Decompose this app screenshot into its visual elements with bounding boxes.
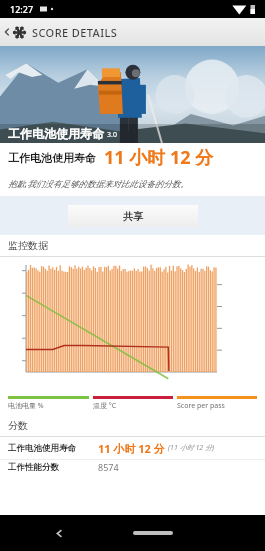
staticText: 工作性能分数 <box>8 462 98 473</box>
staticText: 11 小时 12 分 <box>104 145 214 170</box>
staticText: 共享 <box>123 210 143 223</box>
staticText: 分数 <box>8 419 28 432</box>
button[interactable]: Back <box>48 522 70 544</box>
button[interactable]: 共享 <box>68 205 198 227</box>
button[interactable]: Home <box>130 526 176 540</box>
staticText: (11 小时 12 分) <box>168 443 214 453</box>
button[interactable]: Back <box>0 18 122 46</box>
staticText: Score per pass <box>177 401 225 411</box>
staticText: 工作电池使用寿命 <box>8 443 98 454</box>
staticText: 工作电池使用寿命 <box>8 126 104 141</box>
staticText: 11 小时 12 分 <box>98 441 165 456</box>
button[interactable]: 工作电池使用寿命 <box>0 437 265 459</box>
staticText: SCORE DETAILS <box>32 25 118 40</box>
staticText: 工作电池使用寿命 <box>8 151 96 165</box>
staticText: 电池电量 % <box>8 401 44 411</box>
staticText: 抱歉,我们没有足够的数据来对比此设备的分数。 <box>8 178 189 190</box>
staticText: 3.0 <box>107 130 117 140</box>
staticText: 8574 <box>98 461 119 473</box>
staticText: 12:27 <box>10 3 34 15</box>
button[interactable]: 工作性能分数 <box>0 460 265 474</box>
staticText: 温度 °C <box>93 401 117 411</box>
staticText: 监控数据 <box>8 239 48 252</box>
